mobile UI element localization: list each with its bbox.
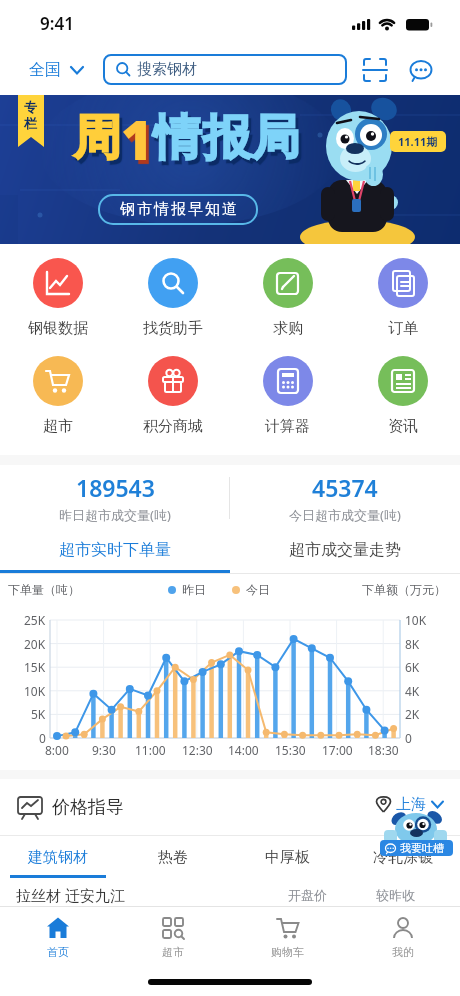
button[interactable]: 购物车 xyxy=(230,907,345,968)
staticText: 钢市情报早知道 xyxy=(119,200,238,219)
button[interactable]: 上海 xyxy=(375,795,444,814)
button[interactable]: 45374 xyxy=(230,465,460,530)
button[interactable]: 专 xyxy=(0,95,460,244)
staticText: 9:30 xyxy=(92,742,116,758)
staticText: 1 xyxy=(121,102,153,176)
staticText: 搜索钢材 xyxy=(137,60,197,79)
staticText: 订单 xyxy=(388,319,418,338)
staticText: 0 xyxy=(405,730,412,746)
staticText: 18:30 xyxy=(368,742,399,758)
button[interactable]: 热卷 xyxy=(115,836,230,878)
staticText: 4K xyxy=(405,683,420,699)
staticText: 资讯 xyxy=(388,417,418,436)
staticText: 超市 xyxy=(43,417,73,436)
staticText: 中厚板 xyxy=(265,848,310,867)
staticText: 较昨收 xyxy=(376,887,415,903)
staticText: 上海 xyxy=(396,795,426,814)
button[interactable]: 超市 xyxy=(0,356,115,436)
staticText: 189543 xyxy=(76,472,155,503)
staticText: 我要吐槽 xyxy=(400,841,444,855)
staticText: 10K xyxy=(24,683,46,699)
staticText: 0 xyxy=(39,730,46,746)
staticText: 5K xyxy=(31,706,46,722)
button[interactable]: 钢银数据 xyxy=(0,258,115,338)
staticText: 购物车 xyxy=(271,945,304,959)
staticText: 栏 xyxy=(24,115,37,131)
staticText: 今日 xyxy=(246,582,270,597)
button[interactable]: 超市成交量走势 xyxy=(230,530,460,570)
button[interactable] xyxy=(407,56,435,84)
staticText: 8K xyxy=(405,636,420,652)
staticText: 17:00 xyxy=(322,742,353,758)
button[interactable]: 订单 xyxy=(345,258,460,338)
button[interactable]: 找货助手 xyxy=(115,258,230,338)
staticText: 10K xyxy=(405,612,427,628)
button[interactable] xyxy=(361,56,389,84)
staticText: 拉丝材 迁安九江 xyxy=(16,885,125,905)
staticText: 下单额（万元） xyxy=(362,582,446,597)
staticText: 6K xyxy=(405,659,420,675)
staticText: 求购 xyxy=(273,319,303,338)
button[interactable]: 计算器 xyxy=(230,356,345,436)
staticText: 全国 xyxy=(29,60,61,80)
staticText: 2K xyxy=(405,706,420,722)
staticText: 超市成交量走势 xyxy=(289,540,401,560)
button[interactable]: 189543 xyxy=(0,465,230,530)
button[interactable]: 中厚板 xyxy=(230,836,345,878)
staticText: 45374 xyxy=(312,472,378,503)
staticText: 钢银数据 xyxy=(28,319,88,338)
staticText: 今日超市成交量(吨) xyxy=(289,506,401,524)
staticText: 热卷 xyxy=(158,848,188,867)
button[interactable]: 资讯 xyxy=(345,356,460,436)
staticText: 25K xyxy=(24,612,46,628)
button[interactable]: 我的 xyxy=(345,907,460,968)
staticText: 首页 xyxy=(47,945,69,959)
button[interactable]: 冷轧涂镀 xyxy=(345,836,460,878)
staticText: 专 xyxy=(24,99,37,115)
staticText: 15:30 xyxy=(275,742,306,758)
staticText: 15K xyxy=(24,659,46,675)
staticText: 超市 xyxy=(162,945,184,959)
button[interactable]: 超市实时下单量 xyxy=(0,530,230,570)
button[interactable]: 搜索钢材 xyxy=(103,54,347,85)
staticText: 下单量（吨） xyxy=(8,582,80,597)
staticText: 14:00 xyxy=(228,742,259,758)
staticText: 建筑钢材 xyxy=(28,848,88,867)
staticText: 8:00 xyxy=(45,742,69,758)
staticText: 冷轧涂镀 xyxy=(373,848,433,867)
staticText: 找货助手 xyxy=(143,319,203,338)
staticText: 计算器 xyxy=(265,417,310,436)
button[interactable]: 超市 xyxy=(115,907,230,968)
button[interactable]: 积分商城 xyxy=(115,356,230,436)
button[interactable]: 求购 xyxy=(230,258,345,338)
staticText: 开盘价 xyxy=(288,887,327,903)
staticText: 11.11期 xyxy=(398,134,438,149)
staticText: 12:30 xyxy=(182,742,213,758)
staticText: 超市实时下单量 xyxy=(59,540,171,560)
staticText: 20K xyxy=(24,636,46,652)
staticText: 周 xyxy=(73,108,121,168)
staticText: 昨日 xyxy=(182,582,206,597)
button[interactable]: 首页 xyxy=(0,907,115,968)
button[interactable]: 我要吐槽 xyxy=(380,840,453,856)
staticText: 昨日超市成交量(吨) xyxy=(59,506,171,524)
button[interactable]: 建筑钢材 xyxy=(0,836,115,878)
staticText: 价格指导 xyxy=(52,796,124,819)
staticText: 11:00 xyxy=(135,742,166,758)
staticText: 9:41 xyxy=(40,12,74,35)
staticText: 情报局 xyxy=(153,108,300,168)
staticText: 我的 xyxy=(392,945,414,959)
button[interactable]: 全国 xyxy=(29,60,84,80)
staticText: 积分商城 xyxy=(143,417,203,436)
